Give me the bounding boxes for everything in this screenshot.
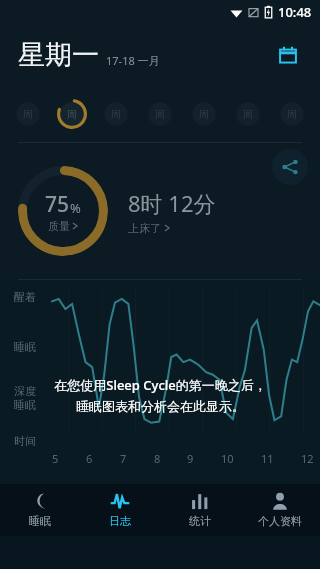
staticText: 17-18 一月 xyxy=(106,53,160,68)
button[interactable]: Calendar xyxy=(270,37,306,73)
button[interactable]: 统计 xyxy=(160,484,240,536)
staticText: 睡眠图表和分析会在此显示。 xyxy=(76,398,245,414)
staticText: 上床了 xyxy=(128,221,161,235)
staticText: 时间 xyxy=(14,434,36,448)
button[interactable]: 8时 12分 xyxy=(128,188,216,235)
staticText: 6 xyxy=(86,451,93,466)
button[interactable]: 日志 xyxy=(80,484,160,536)
staticText: 周 xyxy=(287,108,297,121)
staticText: 75 xyxy=(45,190,70,219)
staticText: 深度 xyxy=(14,384,36,398)
staticText: 5 xyxy=(52,451,59,466)
button[interactable]: 周 xyxy=(12,98,44,130)
staticText: 睡眠 xyxy=(29,514,51,528)
button[interactable]: Share xyxy=(272,149,308,185)
button[interactable]: 睡眠 xyxy=(0,484,80,536)
staticText: 睡眠 xyxy=(14,340,36,354)
staticText: 12 xyxy=(301,451,314,466)
staticText: 周 xyxy=(199,108,209,121)
staticText: 周 xyxy=(67,108,77,121)
button[interactable]: 周 xyxy=(56,98,88,130)
staticText: 星期一 xyxy=(18,38,99,72)
button[interactable]: 周 xyxy=(276,98,308,130)
staticText: 周 xyxy=(111,108,121,121)
staticText: 醒着 xyxy=(14,290,36,304)
staticText: 在您使用Sleep Cycle的第一晚之后， xyxy=(54,376,267,394)
button[interactable]: 周 xyxy=(144,98,176,130)
button[interactable]: 周 xyxy=(188,98,220,130)
staticText: 周 xyxy=(23,108,33,121)
button[interactable]: 周 xyxy=(100,98,132,130)
staticText: 质量 xyxy=(48,219,70,233)
staticText: 统计 xyxy=(189,514,211,528)
staticText: 周 xyxy=(155,108,165,121)
staticText: 9 xyxy=(187,451,194,466)
staticText: 8 xyxy=(154,451,161,466)
staticText: 8时 12分 xyxy=(128,188,216,218)
staticText: 日志 xyxy=(109,514,131,528)
staticText: 个人资料 xyxy=(258,514,302,528)
staticText: 7 xyxy=(120,451,127,466)
staticText: 周 xyxy=(243,108,253,121)
staticText: 10:48 xyxy=(278,3,312,21)
button[interactable]: 个人资料 xyxy=(240,484,320,536)
staticText: 11 xyxy=(261,451,274,466)
staticText: 睡眠 xyxy=(14,398,36,412)
button[interactable]: 75 xyxy=(18,166,108,256)
button[interactable]: 周 xyxy=(232,98,264,130)
staticText: 10 xyxy=(221,451,234,466)
staticText: % xyxy=(70,199,81,217)
